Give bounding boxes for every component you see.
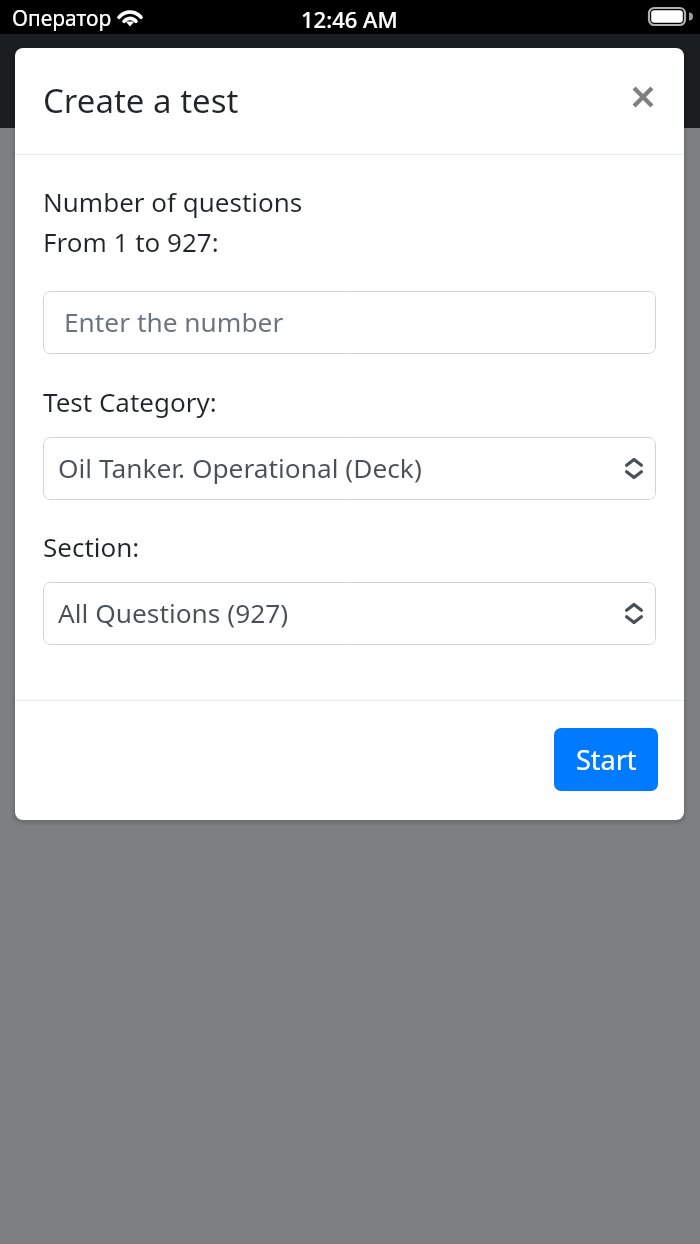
staticText: From 1 to 927: [43,224,219,259]
staticText: Оператор [12,4,112,33]
staticText: 12:46 AM [301,4,398,34]
staticText: Create a test [43,78,239,123]
staticText: Enter the number [64,304,284,340]
button[interactable]: All Questions (927) [43,582,656,645]
staticText: Test Category: [43,384,217,419]
staticText: Oil Tanker. Operational (Deck) [58,450,422,486]
button[interactable]: Dismiss dialog [0,0,700,1244]
staticText: Start [576,741,637,778]
button[interactable]: Oil Tanker. Operational (Deck) [43,437,656,500]
staticText: Number of questions [43,184,303,219]
staticText: Section: [43,529,140,564]
button[interactable]: Close [619,73,667,121]
button[interactable]: Start [554,728,658,791]
button[interactable]: Enter the number [43,291,656,354]
staticText: All Questions (927) [58,595,289,631]
